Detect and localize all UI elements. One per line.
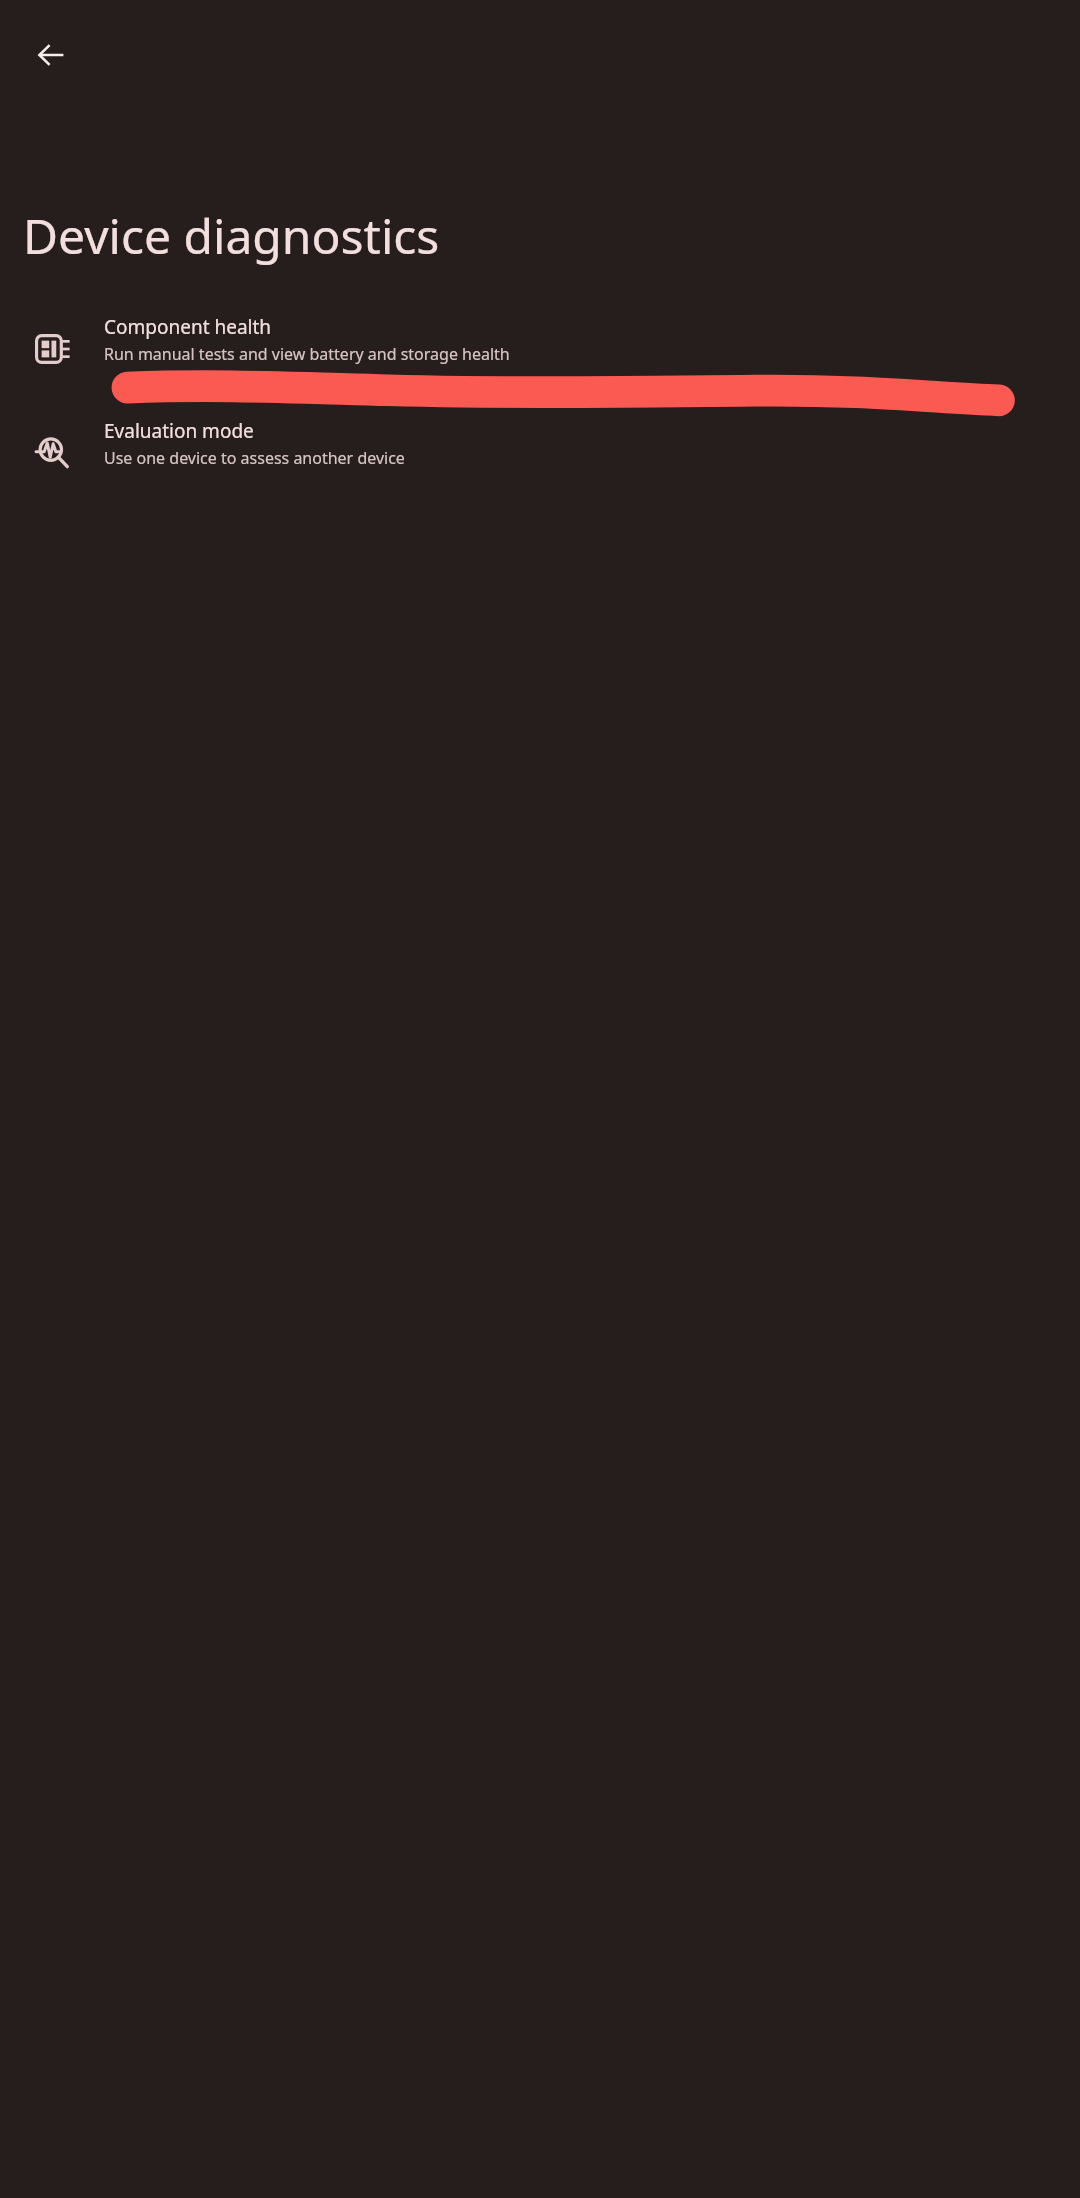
button[interactable]: Back	[24, 27, 80, 83]
staticText: Component health	[104, 314, 272, 339]
staticText: Evaluation mode	[104, 418, 254, 443]
staticText: Use one device to assess another device	[104, 447, 405, 469]
button[interactable]: Component health	[0, 310, 1080, 370]
staticText: Device diagnostics	[23, 210, 440, 266]
button[interactable]: Evaluation mode	[0, 414, 1080, 477]
staticText: Run manual tests and view battery and st…	[104, 343, 510, 365]
